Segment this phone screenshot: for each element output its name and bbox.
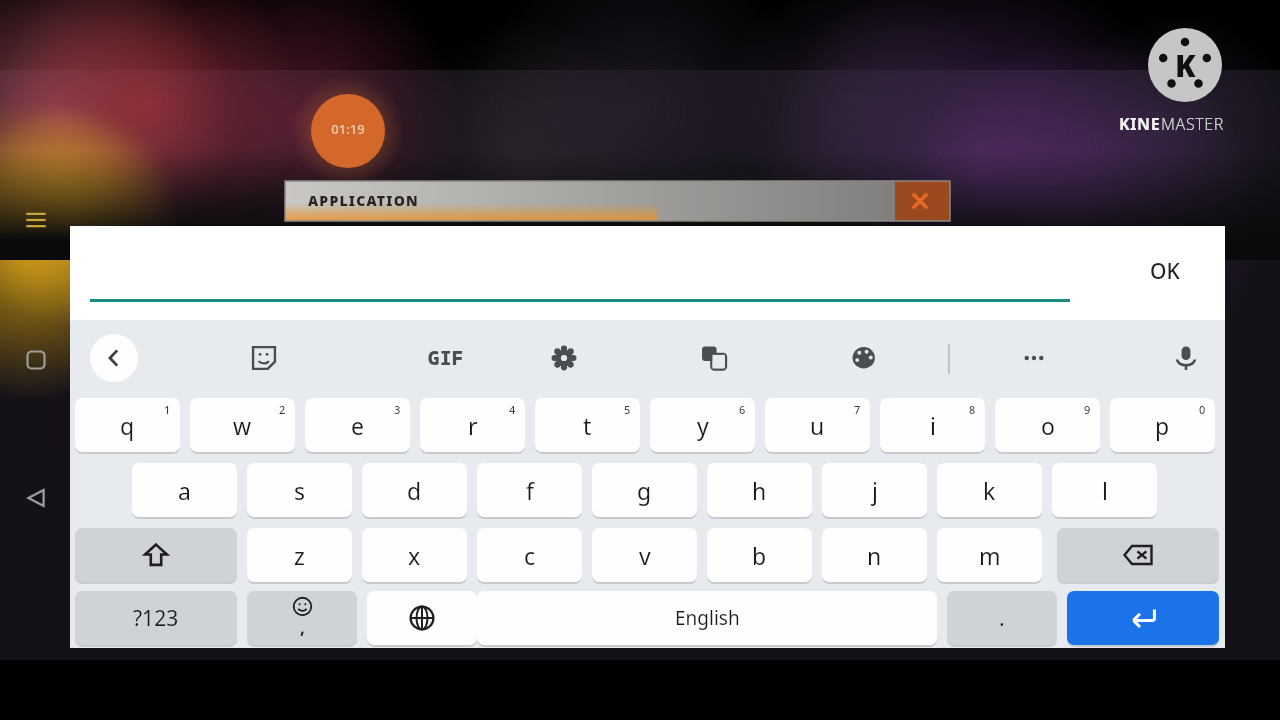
- staticText: j: [872, 475, 878, 506]
- staticText: z: [294, 540, 305, 571]
- button[interactable]: English: [477, 591, 937, 645]
- staticText: o: [1041, 410, 1055, 441]
- staticText: x: [408, 540, 421, 571]
- button[interactable]: u: [765, 398, 870, 452]
- button[interactable]: Shift: [75, 528, 237, 582]
- staticText: K: [1175, 45, 1196, 86]
- staticText: GIF: [428, 345, 464, 371]
- button[interactable]: a: [132, 463, 237, 517]
- staticText: 3: [394, 402, 401, 417]
- staticText: ,: [300, 616, 305, 639]
- button[interactable]: Emoji: [247, 591, 357, 645]
- staticText: .: [999, 604, 1005, 633]
- button[interactable]: b: [707, 528, 812, 582]
- staticText: 4: [509, 402, 516, 417]
- staticText: y: [697, 410, 709, 441]
- staticText: OK: [1150, 257, 1180, 286]
- staticText: l: [1102, 475, 1108, 506]
- button[interactable]: Enter: [1067, 591, 1219, 645]
- button[interactable]: i: [880, 398, 985, 452]
- button[interactable]: f: [477, 463, 582, 517]
- button[interactable]: m: [937, 528, 1042, 582]
- staticText: 01:19: [331, 120, 365, 138]
- button[interactable]: s: [247, 463, 352, 517]
- staticText: 6: [739, 402, 746, 417]
- button[interactable]: c: [477, 528, 582, 582]
- button[interactable]: ?123: [75, 591, 237, 645]
- button[interactable]: j: [822, 463, 927, 517]
- staticText: ?123: [133, 604, 179, 633]
- button[interactable]: Stickers: [242, 336, 286, 380]
- staticText: h: [752, 475, 767, 506]
- button[interactable]: y: [650, 398, 755, 452]
- button[interactable]: OK: [1110, 240, 1220, 302]
- button[interactable]: n: [822, 528, 927, 582]
- button[interactable]: q: [75, 398, 180, 452]
- button[interactable]: GIF: [414, 336, 478, 380]
- staticText: 7: [854, 402, 861, 417]
- staticText: e: [351, 410, 364, 441]
- staticText: m: [979, 540, 1001, 571]
- staticText: n: [867, 540, 882, 571]
- staticText: 8: [969, 402, 976, 417]
- button[interactable]: l: [1052, 463, 1157, 517]
- staticText: d: [407, 475, 422, 506]
- button[interactable]: Back: [90, 334, 138, 382]
- button[interactable]: r: [420, 398, 525, 452]
- staticText: g: [637, 475, 652, 506]
- staticText: 2: [279, 402, 286, 417]
- button[interactable]: z: [247, 528, 352, 582]
- staticText: APPLICATION: [308, 191, 419, 210]
- button[interactable]: d: [362, 463, 467, 517]
- button[interactable]: h: [707, 463, 812, 517]
- button[interactable]: o: [995, 398, 1100, 452]
- button[interactable]: v: [592, 528, 697, 582]
- staticText: 1: [164, 402, 171, 417]
- button[interactable]: Menu: [18, 202, 54, 238]
- staticText: MASTER: [1161, 113, 1224, 135]
- staticText: 9: [1084, 402, 1091, 417]
- button[interactable]: p: [1110, 398, 1215, 452]
- button[interactable]: x: [362, 528, 467, 582]
- staticText: t: [583, 410, 592, 441]
- staticText: s: [294, 475, 306, 506]
- button[interactable]: Translate: [692, 336, 736, 380]
- button[interactable]: Themes: [842, 336, 886, 380]
- staticText: 5: [624, 402, 631, 417]
- button[interactable]: Change language: [367, 591, 477, 645]
- staticText: c: [524, 540, 536, 571]
- staticText: i: [930, 410, 936, 441]
- staticText: k: [983, 475, 996, 506]
- staticText: f: [526, 475, 534, 506]
- button[interactable]: k: [937, 463, 1042, 517]
- staticText: KINE: [1119, 113, 1161, 135]
- button[interactable]: t: [535, 398, 640, 452]
- button[interactable]: Close: [900, 181, 940, 221]
- staticText: r: [468, 410, 478, 441]
- staticText: v: [639, 540, 651, 571]
- staticText: w: [233, 410, 252, 441]
- staticText: a: [178, 475, 191, 506]
- staticText: p: [1155, 410, 1170, 441]
- staticText: q: [120, 410, 135, 441]
- staticText: b: [752, 540, 767, 571]
- button[interactable]: e: [305, 398, 410, 452]
- staticText: 0: [1199, 402, 1206, 417]
- button[interactable]: Backspace: [1057, 528, 1219, 582]
- button[interactable]: Back: [18, 480, 54, 516]
- button[interactable]: g: [592, 463, 697, 517]
- staticText: English: [675, 605, 740, 631]
- button[interactable]: .: [947, 591, 1057, 645]
- button[interactable]: w: [190, 398, 295, 452]
- staticText: u: [810, 410, 825, 441]
- button[interactable]: More options: [1012, 336, 1056, 380]
- button[interactable]: Voice input: [1164, 336, 1208, 380]
- button[interactable]: Home: [18, 342, 54, 378]
- button[interactable]: Settings: [542, 336, 586, 380]
